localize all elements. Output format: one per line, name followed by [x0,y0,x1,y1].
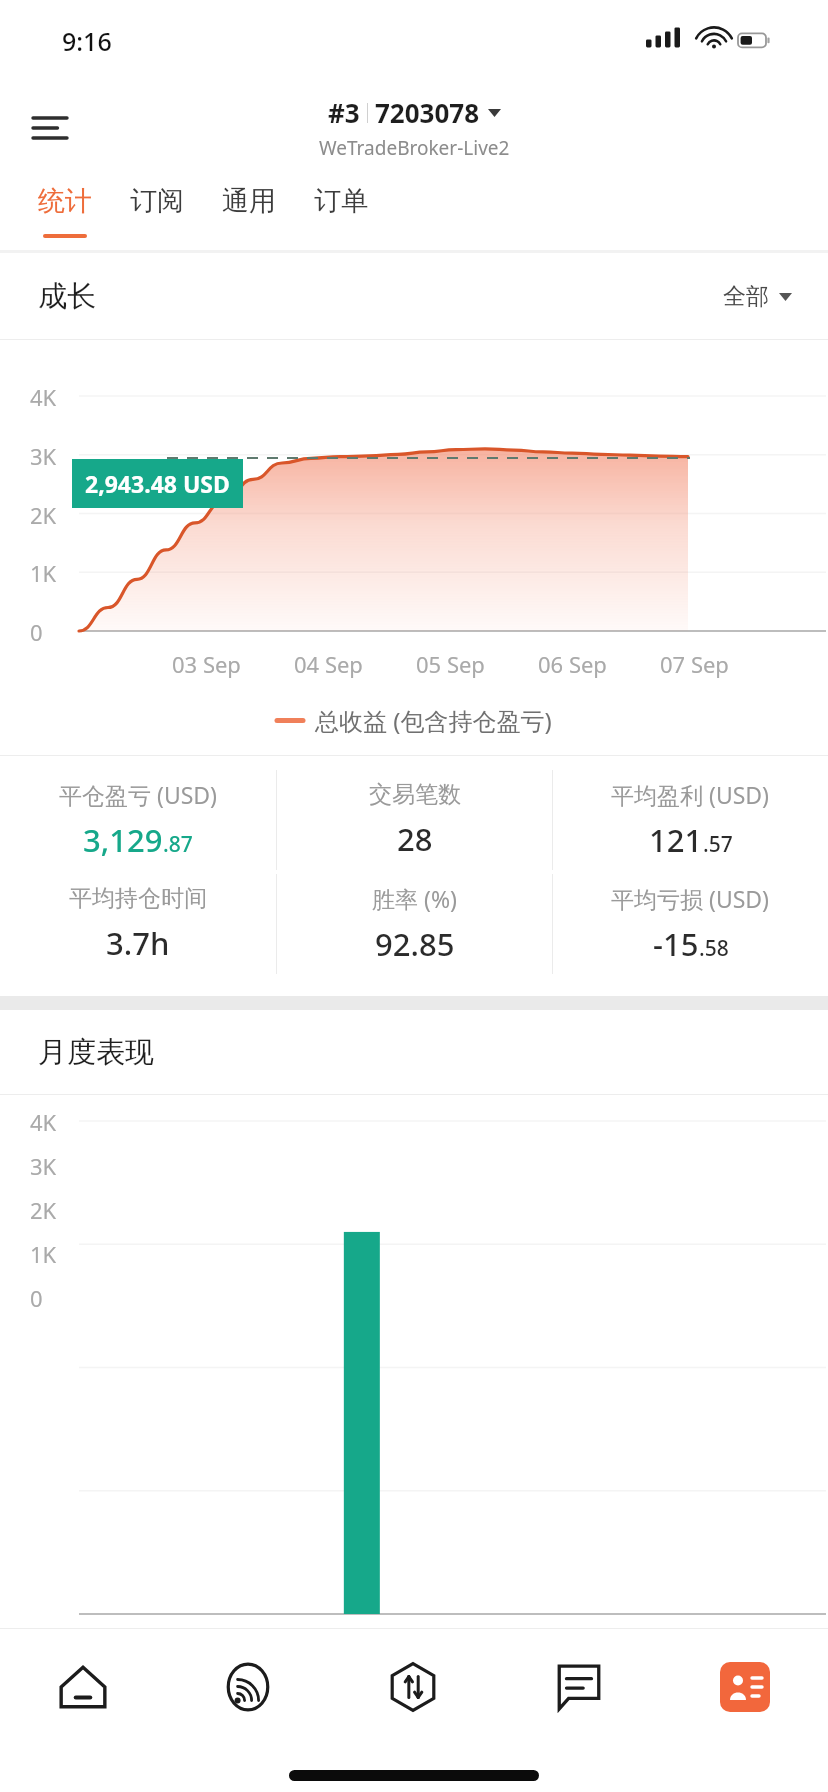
staticText: 121 [649,819,703,861]
staticText: .57 [703,830,733,859]
staticText: 06 Sep [538,649,607,679]
button[interactable]: Chat [496,1628,662,1746]
button[interactable]: 通用 [206,178,292,250]
staticText: -15 [653,923,699,965]
staticText: 28 [397,818,433,860]
staticText: 2K [30,500,57,530]
staticText: 总收益 (包含持仓盈亏) [315,704,552,737]
staticText: 平均持仓时间 [69,884,207,913]
button[interactable]: Trade [330,1628,496,1746]
staticText: 3,129 [83,819,163,861]
staticText: #3 [328,95,360,130]
staticText: 交易笔数 [369,780,461,809]
button[interactable]: 全部 [723,282,792,311]
staticText: 3.7h [106,922,170,964]
staticText: 1K [30,1239,57,1269]
button[interactable]: Profile [662,1628,828,1746]
staticText: .58 [699,934,729,963]
staticText: 通用 [222,184,276,218]
button[interactable]: Menu [22,100,78,156]
button[interactable]: Home [0,1628,165,1746]
staticText: 订单 [314,184,368,218]
staticText: 9:16 [62,24,112,58]
staticText: 0 [30,1283,43,1313]
staticText: 统计 [38,184,92,218]
staticText: 月度表现 [38,1034,154,1071]
staticText: 2,943.48 USD [85,468,230,499]
staticText: 92.85 [375,923,455,965]
staticText: 05 Sep [416,649,485,679]
button[interactable]: 统计 [22,178,108,250]
staticText: 胜率 (%) [372,883,457,914]
staticText: 1K [30,558,57,588]
button[interactable]: Signals [165,1628,330,1746]
button[interactable]: 订阅 [114,178,200,250]
staticText: 成长 [38,278,96,315]
staticText: 7203078 [375,95,480,130]
staticText: 平仓盈亏 (USD) [59,779,218,810]
staticText: 全部 [723,282,769,311]
staticText: 04 Sep [294,649,363,679]
staticText: 平均亏损 (USD) [611,883,770,914]
staticText: 3K [30,1151,57,1181]
staticText: 2K [30,1195,57,1225]
staticText: 03 Sep [172,649,241,679]
staticText: WeTradeBroker-Live2 [319,135,510,161]
staticText: 0 [30,617,43,647]
staticText: 平均盈利 (USD) [611,779,770,810]
button[interactable]: 订单 [298,178,384,250]
staticText: .87 [163,830,193,859]
staticText: 4K [30,1107,57,1137]
staticText: 4K [30,382,57,412]
staticText: 3K [30,441,57,471]
staticText: 07 Sep [660,649,729,679]
staticText: 订阅 [130,184,184,218]
button[interactable]: #3 [319,95,510,161]
